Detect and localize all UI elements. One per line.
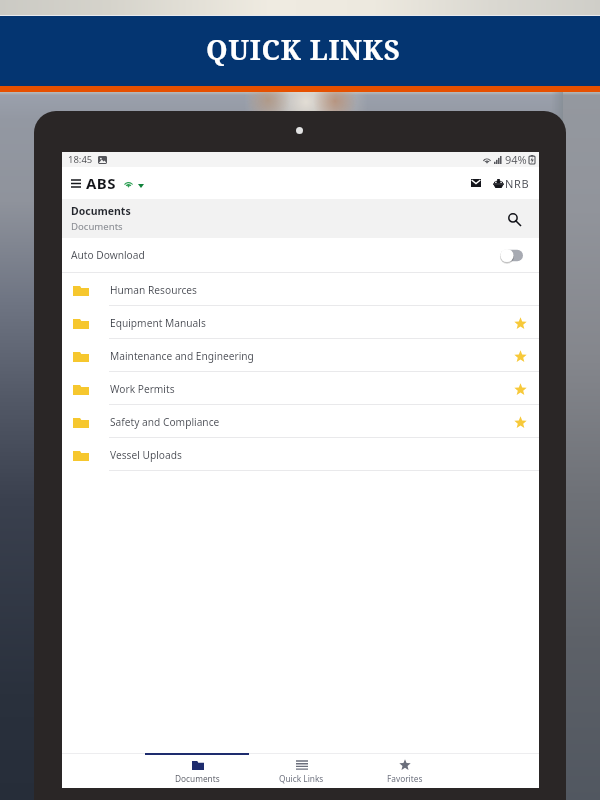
button[interactable]: NRB: [493, 176, 530, 191]
staticText: Auto Download: [71, 248, 145, 262]
staticText: Equipment Manuals: [110, 316, 206, 330]
button[interactable]: Quick Links: [249, 754, 353, 788]
staticText: 94%: [505, 152, 527, 167]
staticText: QUICK LINKS: [206, 31, 401, 68]
staticText: Vessel Uploads: [110, 448, 182, 462]
staticText: Documents: [71, 204, 131, 218]
button[interactable]: Mail: [467, 174, 485, 192]
staticText: Documents: [175, 773, 220, 784]
staticText: Documents: [71, 220, 123, 233]
staticText: Safety and Compliance: [110, 415, 220, 429]
staticText: Maintenance and Engineering: [110, 349, 254, 363]
staticText: Favorites: [387, 773, 423, 784]
staticText: Quick Links: [279, 773, 324, 784]
button[interactable]: Human Resources: [62, 273, 539, 305]
button[interactable]: Documents: [145, 754, 249, 788]
staticText: 18:45: [68, 153, 93, 166]
staticText: Work Permits: [110, 382, 175, 396]
button[interactable]: Menu: [71, 179, 81, 188]
button[interactable]: Search: [504, 209, 524, 229]
button[interactable]: Maintenance and Engineering: [62, 339, 539, 371]
button[interactable]: Equipment Manuals: [62, 306, 539, 338]
button[interactable]: Work Permits: [62, 372, 539, 404]
button[interactable]: Safety and Compliance: [62, 405, 539, 437]
staticText: Human Resources: [110, 283, 197, 297]
button[interactable]: Vessel Uploads: [62, 438, 539, 470]
button[interactable]: Favorites: [353, 754, 457, 788]
button[interactable]: Auto Download: [62, 238, 539, 272]
staticText: ABS: [86, 173, 116, 193]
staticText: NRB: [505, 176, 530, 191]
